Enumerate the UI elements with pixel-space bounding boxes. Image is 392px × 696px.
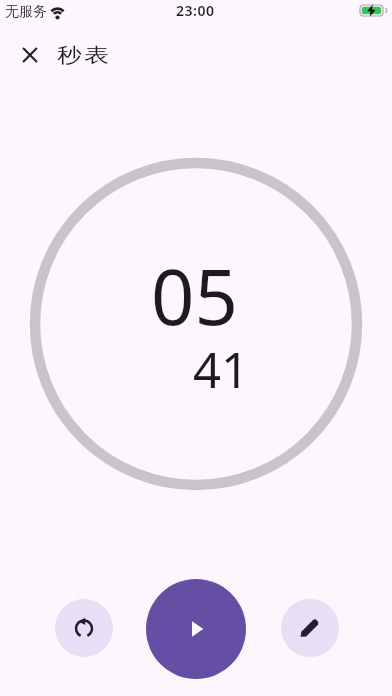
staticText: 23:00 bbox=[176, 1, 215, 20]
button[interactable] bbox=[55, 599, 113, 657]
staticText: 41 bbox=[193, 336, 250, 403]
staticText: 秒表 bbox=[56, 43, 110, 69]
button[interactable] bbox=[146, 579, 246, 679]
button[interactable] bbox=[281, 599, 339, 657]
button[interactable] bbox=[14, 39, 46, 71]
staticText: 无服务 bbox=[5, 3, 47, 21]
staticText: 05 bbox=[151, 244, 238, 348]
